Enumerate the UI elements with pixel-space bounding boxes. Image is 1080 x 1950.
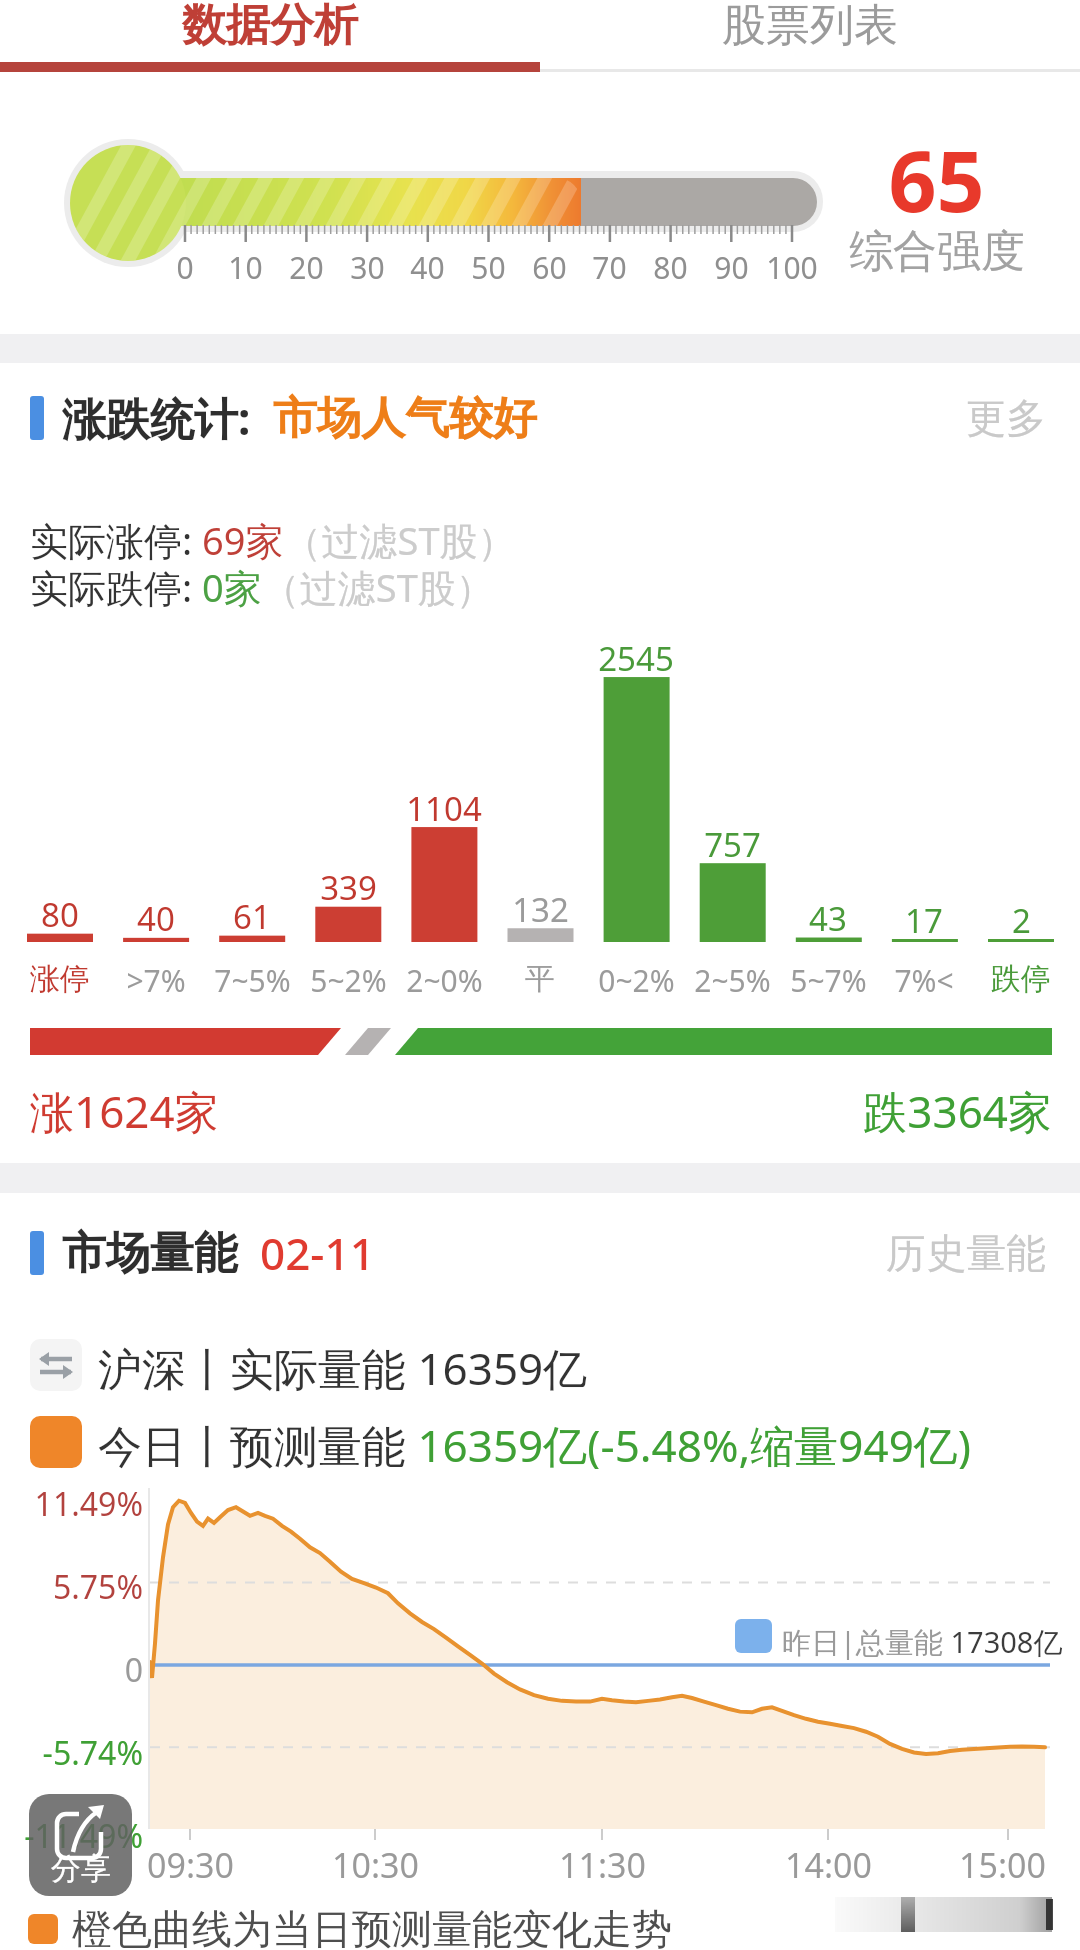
staticText: 14:00	[785, 1842, 872, 1888]
button[interactable]: 今日丨预测量能 16359亿(-5.48%,缩量949亿)	[30, 1415, 1050, 1469]
staticText: 11:30	[559, 1842, 646, 1888]
staticText: 09:30	[147, 1842, 234, 1888]
staticText: 43	[809, 896, 847, 941]
staticText: 5~7%	[790, 960, 867, 1001]
staticText: 80	[653, 247, 688, 288]
staticText: 50	[471, 247, 506, 288]
staticText: 132	[512, 887, 569, 932]
staticText: 100	[766, 247, 818, 288]
staticText: 数据分析	[182, 0, 358, 53]
staticText: 2545	[598, 636, 674, 681]
button[interactable]: 沪深丨实际量能 16359亿	[30, 1338, 1050, 1392]
staticText: 跌3364家	[863, 1081, 1052, 1141]
staticText: 5.75%	[52, 1565, 143, 1609]
staticText: 分享	[51, 1850, 111, 1888]
staticText: 40	[137, 896, 175, 941]
button[interactable]: 涨跌统计:	[0, 382, 1080, 454]
staticText: 股票列表	[722, 0, 898, 53]
staticText: 涨1624家	[30, 1081, 219, 1141]
staticText: 2~5%	[694, 960, 771, 1001]
button[interactable]: 市场量能	[0, 1217, 1080, 1289]
staticText: 综合强度	[849, 224, 1025, 279]
staticText: -11.49%	[24, 1814, 143, 1858]
button[interactable]: 股票列表	[540, 0, 1080, 55]
staticText: 更多	[966, 393, 1046, 443]
staticText: 历史量能	[886, 1228, 1046, 1278]
staticText: 757	[704, 822, 761, 867]
staticText: 0	[124, 1648, 143, 1692]
staticText: 市场人气较好	[273, 391, 537, 446]
staticText: 1104	[406, 786, 482, 831]
staticText: 40	[410, 247, 445, 288]
staticText: 2	[1012, 898, 1031, 943]
staticText: 30	[350, 247, 385, 288]
staticText: 市场量能	[62, 1226, 238, 1281]
staticText: 平	[525, 960, 555, 998]
staticText: 90	[714, 247, 749, 288]
staticText: 2~0%	[406, 960, 483, 1001]
staticText: 17	[905, 898, 943, 943]
staticText: 昨日|总量能 17308亿	[782, 1622, 1063, 1662]
staticText: 80	[41, 892, 79, 937]
staticText: 65	[888, 122, 985, 236]
staticText: 实际跌停: 0家（过滤ST股）	[30, 561, 494, 613]
staticText: 今日丨预测量能 16359亿(-5.48%,缩量949亿)	[98, 1415, 972, 1469]
staticText: 0~2%	[598, 960, 675, 1001]
staticText: 02-11	[260, 1223, 375, 1283]
staticText: >7%	[126, 960, 186, 1001]
staticText: 339	[320, 865, 377, 910]
staticText: 60	[532, 247, 567, 288]
staticText: 7%<	[894, 960, 954, 1001]
button[interactable]: 分享	[29, 1794, 132, 1896]
staticText: 5~2%	[310, 960, 387, 1001]
staticText: 0	[176, 247, 194, 288]
staticText: 沪深丨实际量能 16359亿	[98, 1338, 588, 1392]
staticText: 跌停	[991, 960, 1051, 998]
staticText: 15:00	[959, 1842, 1046, 1888]
staticText: 20	[289, 247, 324, 288]
staticText: 7~5%	[214, 960, 291, 1001]
button[interactable]: 数据分析	[0, 0, 540, 55]
staticText: 实际涨停: 69家（过滤ST股）	[30, 514, 516, 566]
staticText: 70	[592, 247, 627, 288]
staticText: 10	[228, 247, 263, 288]
staticText: 橙色曲线为当日预测量能变化走势	[72, 1904, 672, 1950]
staticText: -5.74%	[42, 1731, 143, 1775]
staticText: 11.49%	[34, 1482, 143, 1526]
staticText: 10:30	[332, 1842, 419, 1888]
staticText: 涨跌统计:	[62, 388, 251, 448]
staticText: 涨停	[30, 960, 90, 998]
staticText: 61	[233, 894, 271, 939]
